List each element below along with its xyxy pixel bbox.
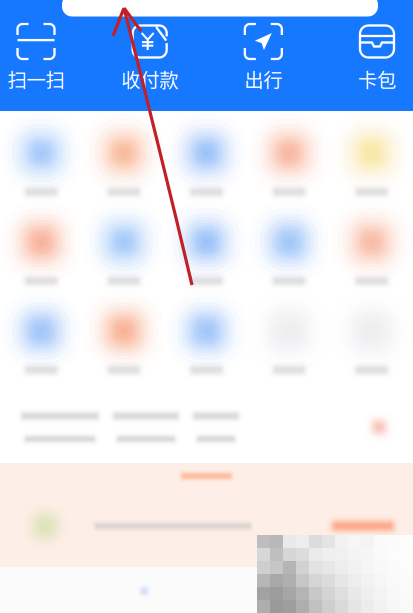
staticText: 出行 [244,65,282,93]
button[interactable] [83,305,165,383]
button[interactable] [248,216,330,294]
button[interactable] [0,305,83,383]
button[interactable] [0,463,413,567]
staticText: 扫一扫 [7,65,64,93]
button[interactable]: 扫一扫 [0,24,72,93]
button[interactable] [330,216,413,294]
button[interactable] [248,127,330,205]
button[interactable] [330,305,413,383]
button[interactable] [14,406,106,448]
staticText: 卡包 [358,65,396,93]
button[interactable] [83,127,165,205]
button[interactable] [0,127,83,205]
button[interactable] [330,127,413,205]
button[interactable] [0,216,83,294]
button[interactable] [165,127,248,205]
button[interactable] [83,216,165,294]
button[interactable] [165,305,248,383]
staticText: 收付款 [121,65,178,93]
button[interactable]: 出行 [227,24,299,93]
button[interactable] [106,406,186,448]
button[interactable]: 卡包 [341,24,413,93]
button[interactable] [248,305,330,383]
button[interactable] [186,406,246,448]
button[interactable] [165,216,248,294]
button[interactable]: 收付款 [114,24,186,93]
